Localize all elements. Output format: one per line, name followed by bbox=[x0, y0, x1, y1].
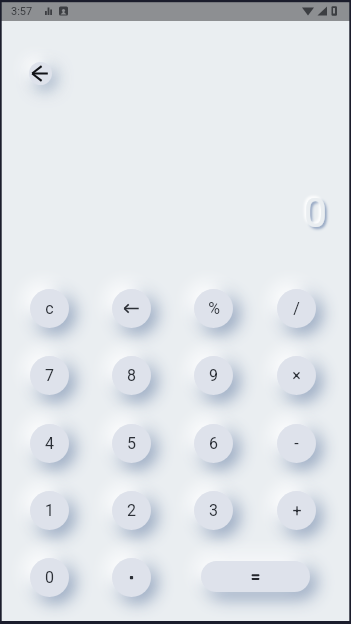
button[interactable]: / bbox=[277, 289, 316, 328]
staticText: 1 bbox=[45, 501, 54, 520]
staticText: 7 bbox=[45, 366, 54, 385]
staticText: 2 bbox=[127, 501, 136, 520]
button[interactable]: Backspace bbox=[112, 289, 151, 328]
button[interactable]: 7 bbox=[30, 356, 69, 395]
staticText: 3:57 bbox=[11, 5, 33, 18]
button[interactable]: Decimal point bbox=[112, 558, 151, 597]
button[interactable]: Equals bbox=[201, 561, 310, 592]
button[interactable]: 4 bbox=[30, 424, 69, 463]
staticText: % bbox=[208, 299, 220, 318]
button[interactable]: 3 bbox=[194, 491, 233, 530]
staticText: 3 bbox=[209, 501, 218, 520]
staticText: × bbox=[292, 366, 301, 385]
staticText: / bbox=[293, 299, 300, 318]
staticText: 8 bbox=[127, 366, 136, 385]
button[interactable]: + bbox=[277, 491, 316, 530]
button[interactable]: % bbox=[194, 289, 233, 328]
staticText: 4 bbox=[45, 434, 54, 453]
button[interactable]: 2 bbox=[112, 491, 151, 530]
button[interactable]: 5 bbox=[112, 424, 151, 463]
staticText: 9 bbox=[209, 366, 218, 385]
staticText: 0 bbox=[45, 568, 54, 587]
staticText: 6 bbox=[209, 434, 218, 453]
staticText: - bbox=[294, 434, 299, 453]
staticText: 5 bbox=[127, 434, 136, 453]
staticText: c bbox=[45, 299, 54, 318]
button[interactable]: - bbox=[277, 424, 316, 463]
button[interactable]: c bbox=[30, 289, 69, 328]
staticText: + bbox=[292, 501, 302, 520]
button[interactable]: 1 bbox=[30, 491, 69, 530]
button[interactable]: 6 bbox=[194, 424, 233, 463]
button[interactable]: 9 bbox=[194, 356, 233, 395]
button[interactable]: 0 bbox=[30, 558, 69, 597]
button[interactable]: Back bbox=[29, 62, 52, 85]
button[interactable]: × bbox=[277, 356, 316, 395]
button[interactable]: 8 bbox=[112, 356, 151, 395]
